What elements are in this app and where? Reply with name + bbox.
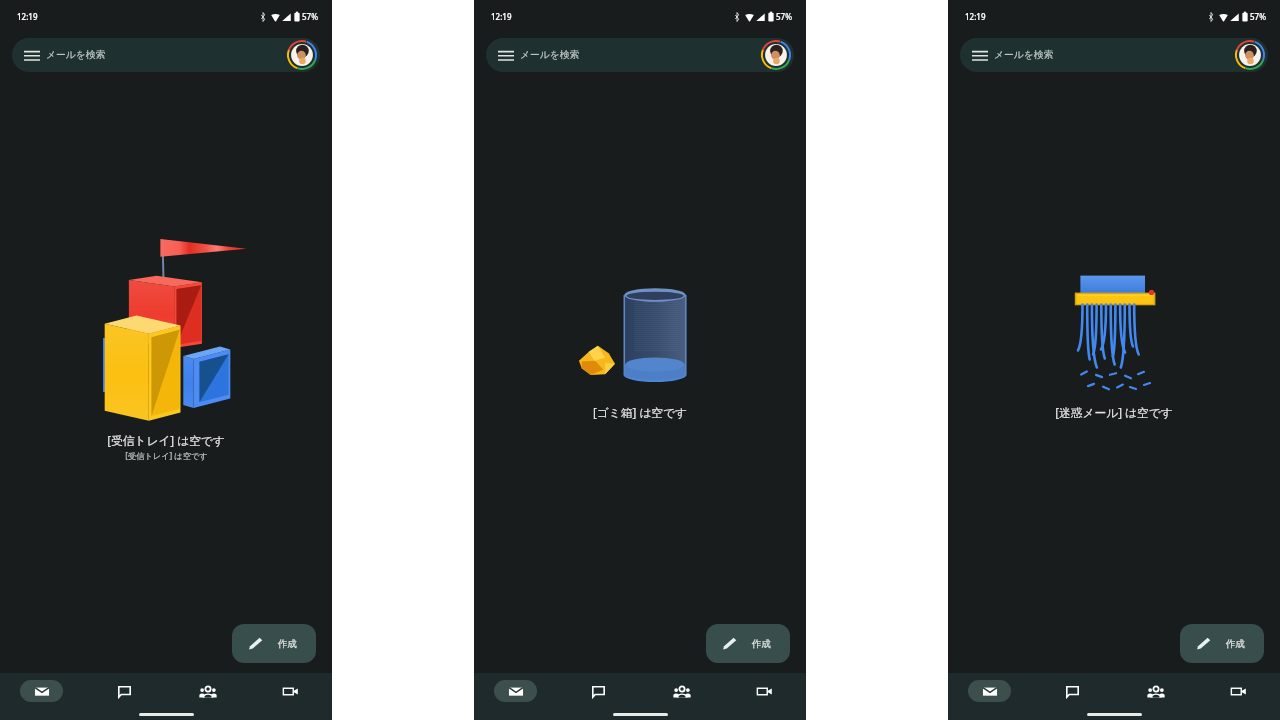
button[interactable]: 作成 <box>706 624 790 663</box>
staticText: 作成 <box>1226 638 1245 650</box>
button[interactable]: Mail <box>494 680 537 702</box>
button[interactable]: Meet <box>743 680 786 702</box>
button[interactable]: メールを検索 <box>960 38 1268 72</box>
button[interactable]: Spaces <box>1134 680 1177 702</box>
staticText: [受信トレイ] は空です <box>107 432 225 448</box>
button[interactable]: Chat <box>1051 680 1094 702</box>
staticText: メールを検索 <box>520 49 580 61</box>
button[interactable]: Mail <box>968 680 1011 702</box>
button[interactable]: Meet <box>269 680 312 702</box>
staticText: 12:19 <box>965 11 986 22</box>
button[interactable]: Meet <box>1217 680 1260 702</box>
staticText: 57% <box>1250 11 1266 22</box>
staticText: 57% <box>776 11 792 22</box>
button[interactable]: Spaces <box>660 680 703 702</box>
staticText: [ゴミ箱] は空です <box>593 404 687 420</box>
button[interactable]: Mail <box>20 680 63 702</box>
button[interactable]: メールを検索 <box>12 38 320 72</box>
button[interactable]: 作成 <box>232 624 316 663</box>
staticText: 作成 <box>278 638 297 650</box>
button[interactable]: メールを検索 <box>486 38 794 72</box>
staticText: 12:19 <box>491 11 512 22</box>
staticText: 12:19 <box>17 11 38 22</box>
staticText: メールを検索 <box>46 49 106 61</box>
staticText: [迷惑メール] は空です <box>1055 404 1173 420</box>
staticText: 57% <box>302 11 318 22</box>
button[interactable]: Chat <box>577 680 620 702</box>
staticText: 作成 <box>752 638 771 650</box>
staticText: [受信トレイ] は空です <box>125 450 208 461</box>
button[interactable]: 作成 <box>1180 624 1264 663</box>
button[interactable]: Chat <box>103 680 146 702</box>
button[interactable]: Spaces <box>186 680 229 702</box>
staticText: メールを検索 <box>994 49 1054 61</box>
